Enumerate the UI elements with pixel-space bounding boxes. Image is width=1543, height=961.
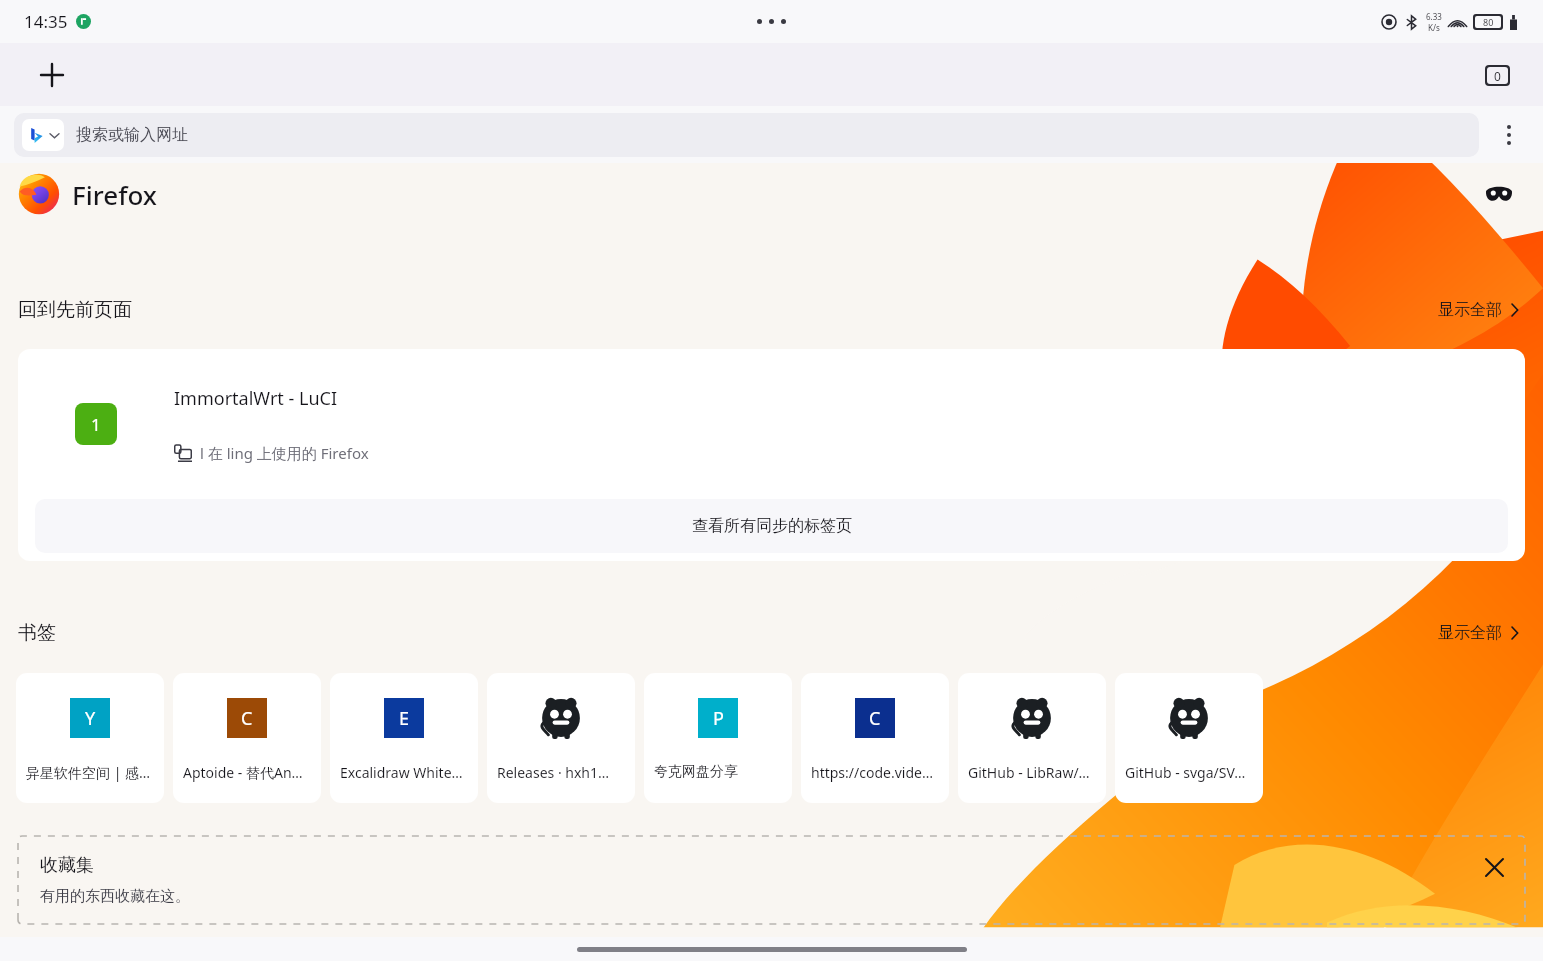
button[interactable]: New tab	[30, 53, 74, 97]
staticText: 显示全部	[1438, 623, 1502, 643]
staticText: K/s	[1428, 22, 1440, 33]
staticText: E	[399, 706, 410, 731]
staticText: 异星软件空间 | 感…	[26, 763, 154, 782]
staticText: 80	[1483, 16, 1494, 28]
button[interactable]: 显示全部	[1438, 623, 1521, 643]
staticText: Releases · hxh1…	[497, 763, 625, 782]
button[interactable]: Y	[16, 673, 164, 803]
button[interactable]: 1	[18, 349, 1525, 561]
staticText: 显示全部	[1438, 300, 1502, 320]
staticText: GitHub - LibRaw/…	[968, 763, 1096, 782]
staticText: P	[713, 706, 724, 731]
staticText: 有用的东西收藏在这。	[40, 887, 190, 906]
staticText: 14:35	[24, 10, 68, 33]
staticText: C	[241, 706, 253, 731]
staticText: l 在 ling 上使用的 Firefox	[200, 443, 369, 463]
button[interactable]: 查看所有同步的标签页	[35, 499, 1508, 553]
staticText: 查看所有同步的标签页	[692, 516, 852, 536]
button[interactable]: C	[801, 673, 949, 803]
button[interactable]: 收藏集	[18, 836, 1525, 924]
staticText: 1	[91, 413, 101, 436]
button[interactable]: Dismiss	[1477, 850, 1511, 884]
staticText: GitHub - svga/SV…	[1125, 763, 1253, 782]
staticText: 书签	[18, 621, 56, 645]
staticText: 回到先前页面	[18, 298, 132, 322]
button[interactable]: GitHub - LibRaw/…	[958, 673, 1106, 803]
button[interactable]: P	[644, 673, 792, 803]
button[interactable]: C	[173, 673, 321, 803]
button[interactable]: 显示全部	[1438, 300, 1521, 320]
staticText: Excalidraw White…	[340, 763, 468, 782]
staticText: 夸克网盘分享	[654, 763, 782, 781]
staticText: 6.33	[1426, 11, 1442, 22]
button[interactable]: Private browsing	[1479, 174, 1519, 214]
staticText: Firefox	[72, 177, 157, 212]
staticText: ImmortalWrt - LuCI	[174, 386, 338, 411]
staticText: Aptoide - 替代An…	[183, 763, 311, 782]
button[interactable]: 搜索或输入网址	[14, 113, 1479, 157]
button[interactable]: More options	[1491, 117, 1527, 153]
button[interactable]: Releases · hxh1…	[487, 673, 635, 803]
staticText: 收藏集	[40, 854, 94, 877]
button[interactable]: Tabs	[1477, 55, 1517, 95]
button[interactable]: E	[330, 673, 478, 803]
staticText: Y	[85, 706, 96, 731]
staticText: 0	[1494, 68, 1501, 84]
staticText: https://code.vide…	[811, 763, 939, 782]
staticText: 搜索或输入网址	[76, 125, 188, 145]
staticText: C	[869, 706, 881, 731]
button[interactable]: GitHub - svga/SV…	[1115, 673, 1263, 803]
